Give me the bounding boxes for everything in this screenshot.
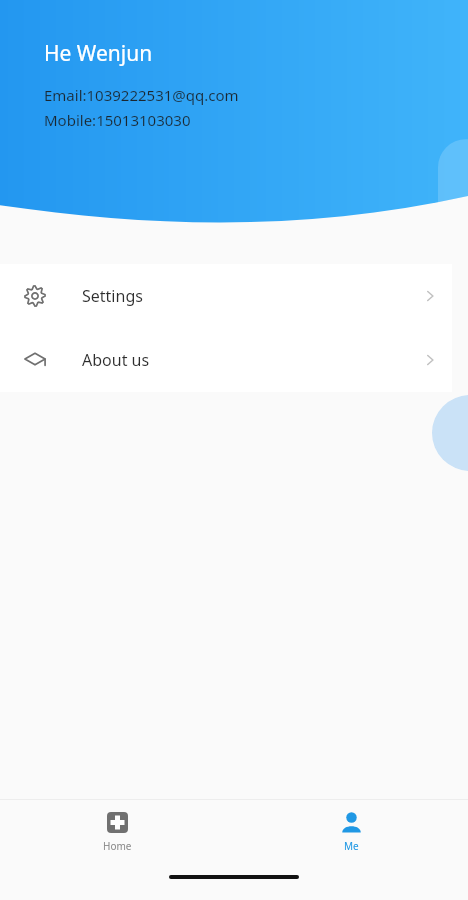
button[interactable]: Me bbox=[234, 800, 468, 862]
button[interactable]: Settings bbox=[0, 264, 452, 328]
staticText: Mobile:15013103030 bbox=[44, 110, 191, 130]
button[interactable]: About us bbox=[0, 328, 452, 392]
staticText: Home bbox=[103, 839, 132, 853]
staticText: He Wenjun bbox=[44, 39, 153, 68]
staticText: Me bbox=[344, 839, 359, 853]
staticText: Settings bbox=[82, 285, 143, 307]
staticText: About us bbox=[82, 349, 150, 371]
button[interactable]: Home bbox=[0, 800, 234, 862]
staticText: Email:1039222531@qq.com bbox=[44, 85, 239, 105]
